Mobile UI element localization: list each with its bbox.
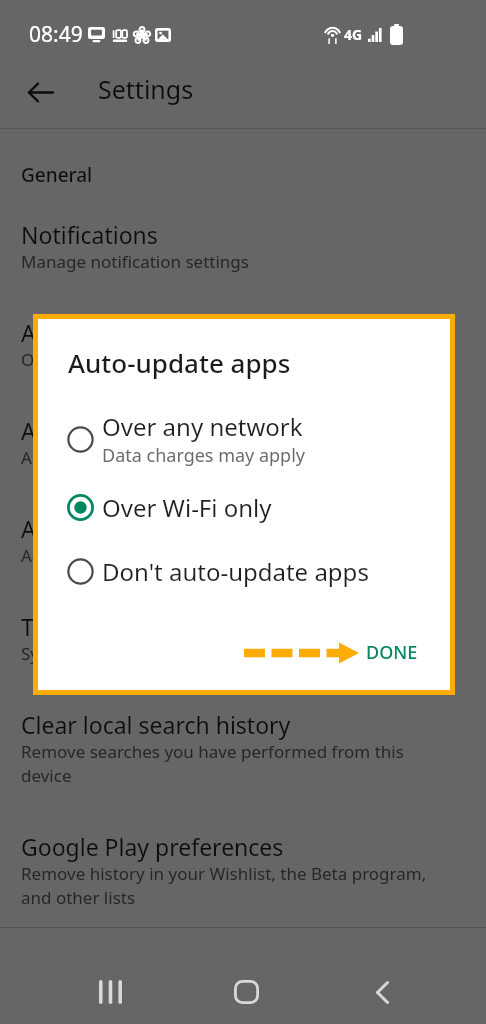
staticText: Always: [21, 446, 76, 469]
staticText: DONE: [366, 640, 418, 665]
staticText: Manage notification settings: [21, 250, 249, 273]
button[interactable]: Auto-add widgets: [0, 508, 486, 606]
button[interactable]: Home: [200, 960, 292, 1024]
staticText: Auto-update apps: [68, 345, 291, 380]
button[interactable]: Over Wi-Fi only: [38, 479, 450, 535]
button[interactable]: Auto-play videos: [0, 410, 486, 508]
button[interactable]: Google Play preferences: [0, 826, 486, 948]
staticText: 08:49: [29, 20, 83, 49]
button[interactable]: Clear local search history: [0, 704, 486, 826]
staticText: Over Wi-Fi only: [21, 348, 142, 371]
staticText: Notifications: [21, 219, 158, 250]
staticText: System default: [21, 642, 140, 665]
staticText: Data charges may apply: [102, 443, 306, 466]
staticText: Auto-play videos: [21, 415, 200, 446]
button[interactable]: Theme: [0, 606, 486, 704]
staticText: Over Wi-Fi only: [102, 491, 272, 524]
staticText: Settings: [98, 72, 194, 106]
staticText: General: [21, 162, 93, 188]
button[interactable]: Recent apps: [64, 960, 156, 1024]
staticText: Over any network: [102, 410, 303, 443]
button[interactable]: Back: [14, 66, 66, 118]
button[interactable]: Notifications: [0, 214, 486, 312]
staticText: Theme: [21, 611, 96, 642]
staticText: Remove history in your Wishlist, the Bet…: [21, 862, 458, 909]
button[interactable]: Back: [336, 960, 428, 1024]
staticText: Google Play preferences: [21, 831, 284, 862]
button[interactable]: Over any network: [38, 411, 450, 467]
staticText: Remove searches you have performed from …: [21, 740, 458, 787]
staticText: Don't auto-update apps: [102, 555, 369, 588]
staticText: Auto-update apps: [21, 317, 215, 348]
button[interactable]: Auto-update apps: [0, 312, 486, 410]
button[interactable]: Don't auto-update apps: [38, 543, 450, 599]
staticText: 4G: [344, 25, 363, 44]
staticText: Auto-add widgets: [21, 513, 212, 544]
button[interactable]: DONE: [359, 633, 425, 672]
staticText: Clear local search history: [21, 709, 291, 740]
staticText: Add icons to Home screen: [21, 544, 230, 567]
